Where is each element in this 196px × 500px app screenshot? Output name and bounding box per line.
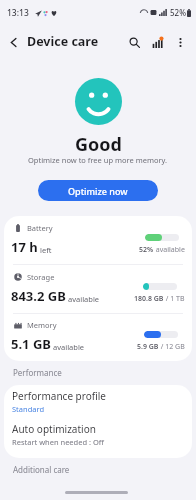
staticText: Good xyxy=(75,132,122,157)
staticText: Battery xyxy=(27,223,53,233)
staticText: 843.2 GB xyxy=(11,287,66,305)
staticText: 180.8 GB xyxy=(134,294,164,304)
button[interactable]: Search xyxy=(123,31,145,53)
staticText: 52% xyxy=(139,245,154,255)
staticText: available xyxy=(68,294,100,304)
button[interactable]: Performance profile xyxy=(4,385,192,422)
staticText: / 12 GB xyxy=(159,342,185,352)
staticText: 5.1 GB xyxy=(11,335,51,353)
staticText: Performance profile xyxy=(12,389,106,403)
staticText: Memory xyxy=(27,320,57,330)
staticText: Standard xyxy=(12,404,45,414)
staticText: 17 h xyxy=(11,238,38,256)
staticText: 52% xyxy=(170,7,186,18)
button[interactable]: Usage statistics xyxy=(146,31,168,53)
staticText: 5.9 GB xyxy=(137,342,159,352)
button[interactable]: Back xyxy=(0,27,26,57)
button[interactable]: More options xyxy=(169,31,191,53)
staticText: Device care xyxy=(27,33,99,50)
staticText: / 1 TB xyxy=(164,294,185,304)
button[interactable]: Battery xyxy=(4,216,192,264)
button[interactable]: Memory xyxy=(4,314,192,361)
button[interactable]: Auto optimization xyxy=(4,422,192,458)
staticText: 13:13 xyxy=(7,7,29,19)
staticText: available xyxy=(53,342,85,352)
staticText: Auto optimization xyxy=(12,422,96,436)
staticText: Optimize now to free up more memory. xyxy=(28,155,168,165)
staticText: Optimize now xyxy=(68,185,128,197)
staticText: Additional care xyxy=(13,464,70,475)
button[interactable]: Optimize now xyxy=(38,180,158,201)
button[interactable]: Storage xyxy=(4,265,192,313)
staticText: left xyxy=(40,245,52,255)
staticText: available xyxy=(154,245,185,255)
staticText: Restart when needed : Off xyxy=(12,437,104,447)
staticText: Performance xyxy=(13,367,62,378)
staticText: Storage xyxy=(27,272,55,282)
